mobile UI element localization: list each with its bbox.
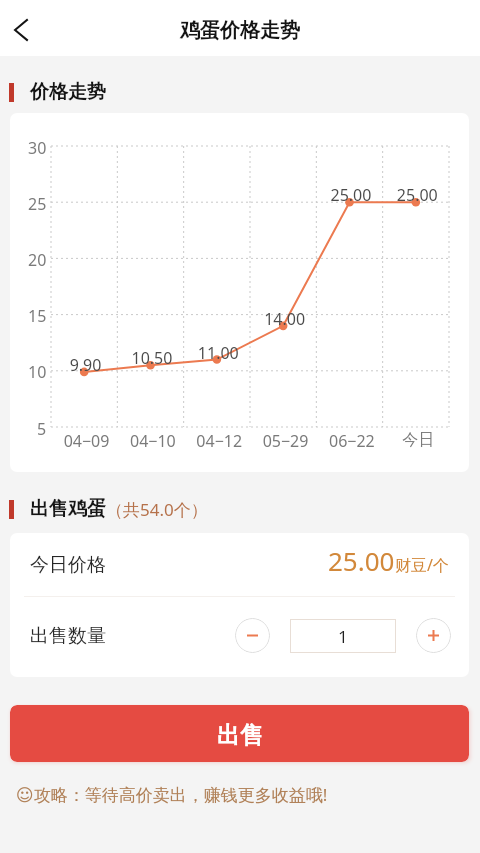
button[interactable]: Back bbox=[0, 5, 46, 51]
button[interactable]: Increase quantity bbox=[416, 618, 451, 653]
staticText: 出售数量 bbox=[30, 624, 106, 648]
staticText: 出售 bbox=[217, 721, 263, 750]
staticText: （共54.0个） bbox=[106, 498, 208, 521]
button[interactable]: 出售 bbox=[10, 705, 469, 762]
staticText: 1 bbox=[338, 625, 348, 648]
staticText: 财豆/个 bbox=[395, 554, 449, 576]
staticText: 鸡蛋价格走势 bbox=[180, 18, 300, 43]
staticText: ☺攻略：等待高价卖出，赚钱更多收益哦! bbox=[16, 783, 328, 806]
staticText: 25.00 bbox=[328, 543, 395, 578]
staticText: 出售鸡蛋 bbox=[30, 497, 106, 521]
staticText: 价格走势 bbox=[30, 80, 106, 104]
button[interactable]: Decrease quantity bbox=[235, 618, 270, 653]
staticText: 今日价格 bbox=[30, 553, 106, 577]
